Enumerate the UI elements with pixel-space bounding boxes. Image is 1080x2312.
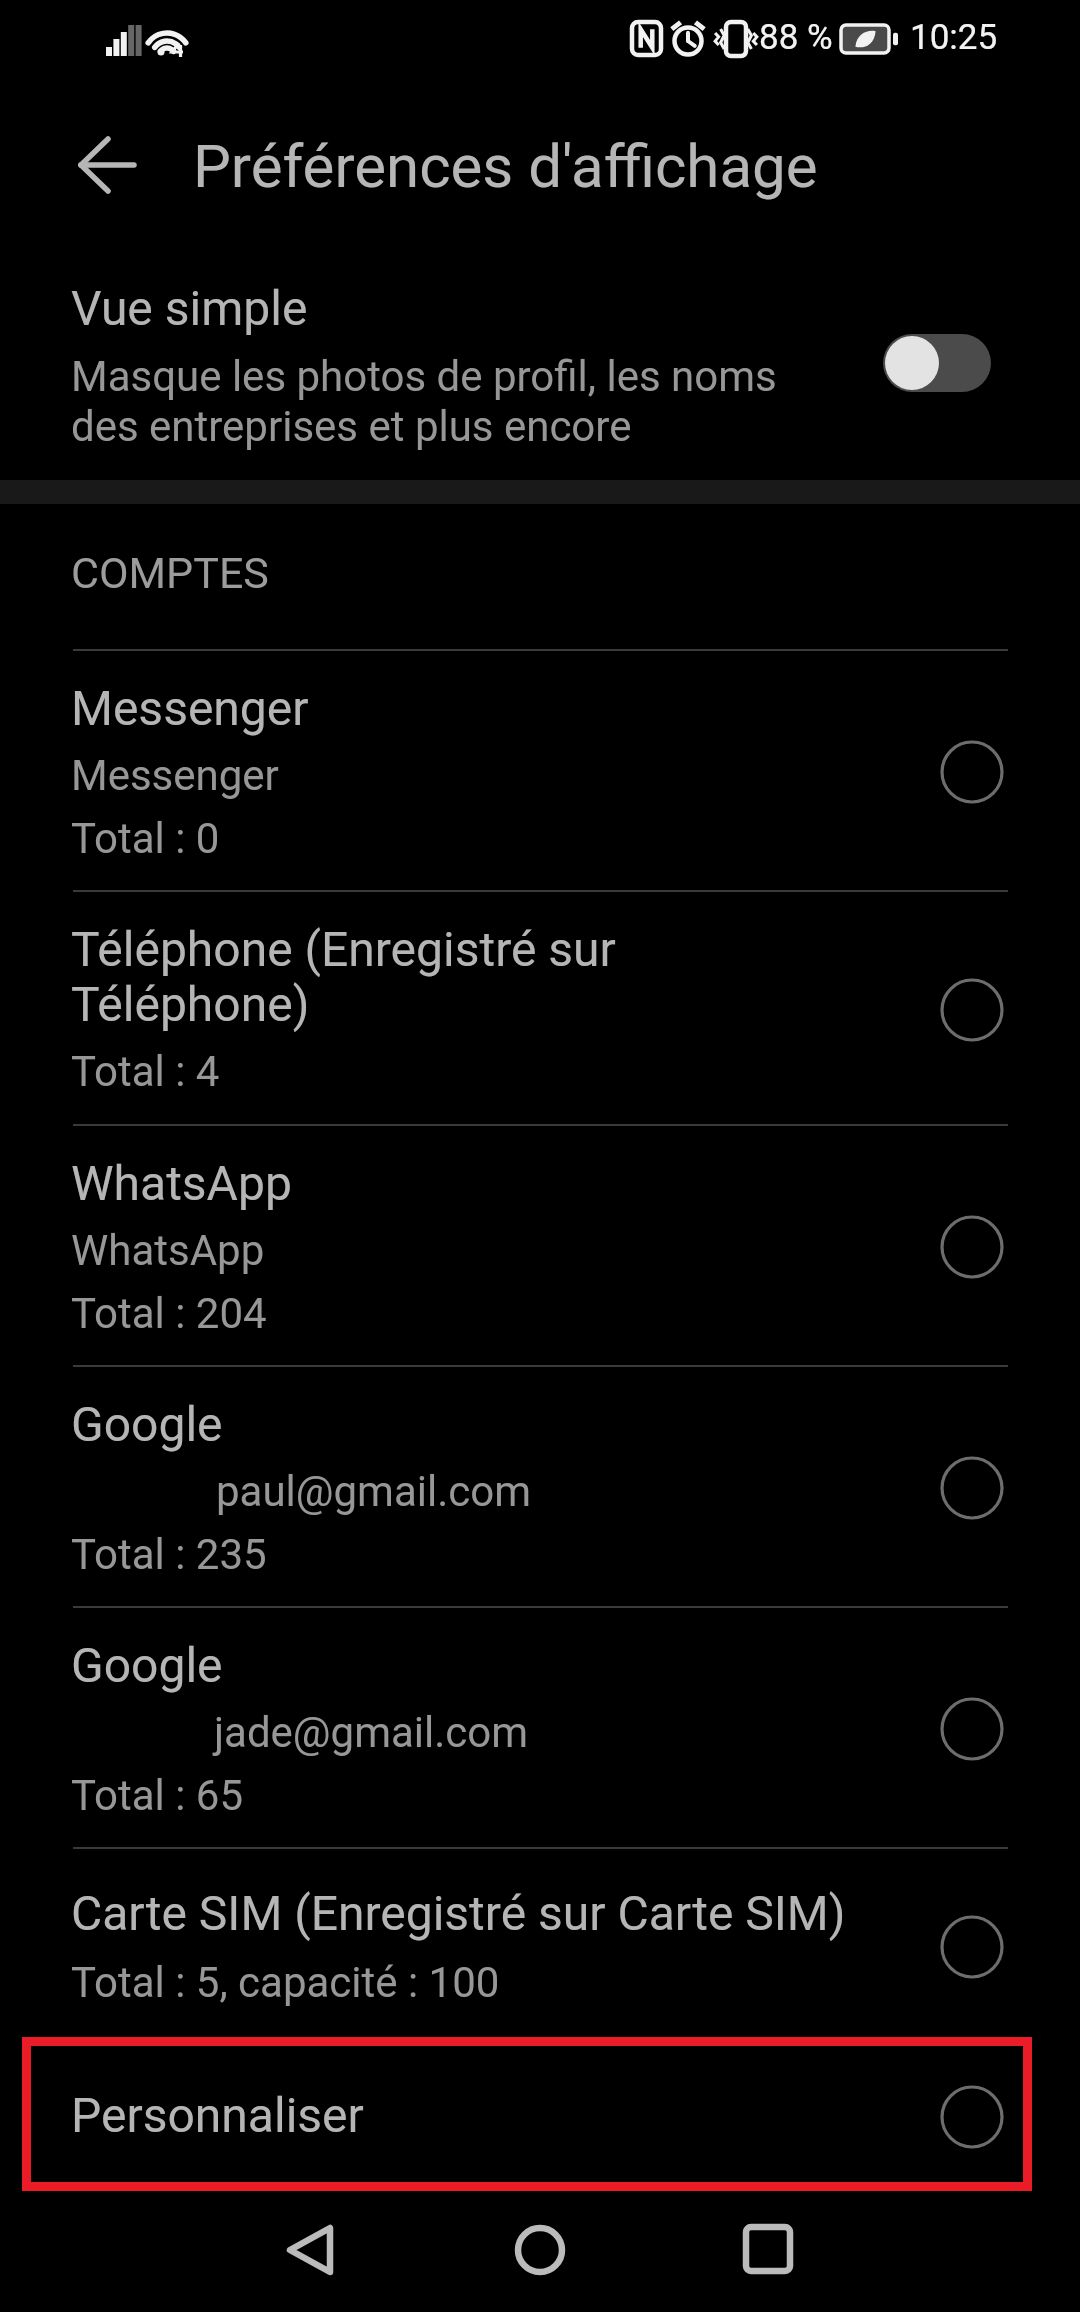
button[interactable]: Google <box>0 1606 1080 1847</box>
staticText: paul@gmail.com <box>216 1467 532 1516</box>
staticText: COMPTES <box>71 548 269 598</box>
button[interactable]: Select <box>938 738 1006 806</box>
button[interactable]: Téléphone (Enregistré sur Téléphone) <box>0 890 1080 1124</box>
staticText: Total : 5, capacité : 100 <box>71 1958 500 2007</box>
button[interactable]: Select <box>938 1695 1006 1763</box>
staticText: Google <box>71 1637 223 1693</box>
staticText: Préférences d'affichage <box>193 131 818 201</box>
staticText: Vue simple <box>71 280 308 336</box>
staticText: Messenger <box>71 751 279 800</box>
button[interactable]: Select <box>938 1213 1006 1281</box>
button[interactable]: Vue simple, désactivé <box>883 334 991 392</box>
button[interactable]: Messenger <box>0 649 1080 890</box>
button[interactable]: Home <box>505 2215 575 2285</box>
button[interactable]: Personnaliser <box>0 2037 1080 2191</box>
button[interactable]: Carte SIM (Enregistré sur Carte SIM) <box>0 1847 1080 2037</box>
button[interactable]: Select <box>938 1454 1006 1522</box>
staticText: Carte SIM (Enregistré sur Carte SIM) <box>71 1885 846 1941</box>
staticText: Total : 235 <box>71 1530 267 1579</box>
button[interactable]: Vue simple <box>0 240 1080 480</box>
button[interactable]: Back <box>277 2215 347 2285</box>
button[interactable]: Recent apps <box>733 2215 803 2285</box>
staticText: Messenger <box>71 680 309 736</box>
button[interactable]: Back <box>61 125 145 205</box>
staticText: WhatsApp <box>71 1226 265 1275</box>
button[interactable]: Select <box>938 2083 1006 2151</box>
staticText: Google <box>71 1396 223 1452</box>
staticText: Total : 0 <box>71 814 220 863</box>
button[interactable]: Select <box>938 976 1006 1044</box>
staticText: Téléphone (Enregistré sur Téléphone) <box>71 921 616 1033</box>
staticText: Total : 4 <box>71 1047 220 1096</box>
staticText: WhatsApp <box>71 1155 292 1211</box>
button[interactable]: Google <box>0 1365 1080 1606</box>
staticText: Personnaliser <box>71 2087 364 2143</box>
button[interactable]: WhatsApp <box>0 1124 1080 1365</box>
staticText: Masque les photos de profil, les noms de… <box>71 352 777 451</box>
staticText: jade@gmail.com <box>214 1708 529 1757</box>
staticText: 10:25 <box>910 17 998 58</box>
staticText: Total : 65 <box>71 1771 243 1820</box>
button[interactable]: Select <box>938 1913 1006 1981</box>
staticText: 88 % <box>759 17 833 58</box>
staticText: Total : 204 <box>71 1289 267 1338</box>
